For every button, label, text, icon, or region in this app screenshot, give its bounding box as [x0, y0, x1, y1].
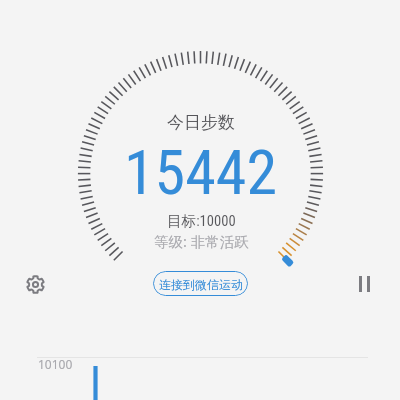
staticText: 10100 — [38, 356, 73, 372]
staticText: 目标:10000 — [167, 212, 236, 230]
staticText: 今日步数 — [167, 112, 235, 133]
staticText: 15442 — [124, 136, 278, 209]
staticText: 连接到微信运动 — [159, 277, 243, 292]
button[interactable]: 连接到微信运动 — [153, 271, 248, 296]
staticText: 等级: 非常活跃 — [154, 231, 249, 251]
button[interactable]: Pause — [350, 270, 378, 298]
button[interactable]: Settings — [21, 270, 49, 298]
